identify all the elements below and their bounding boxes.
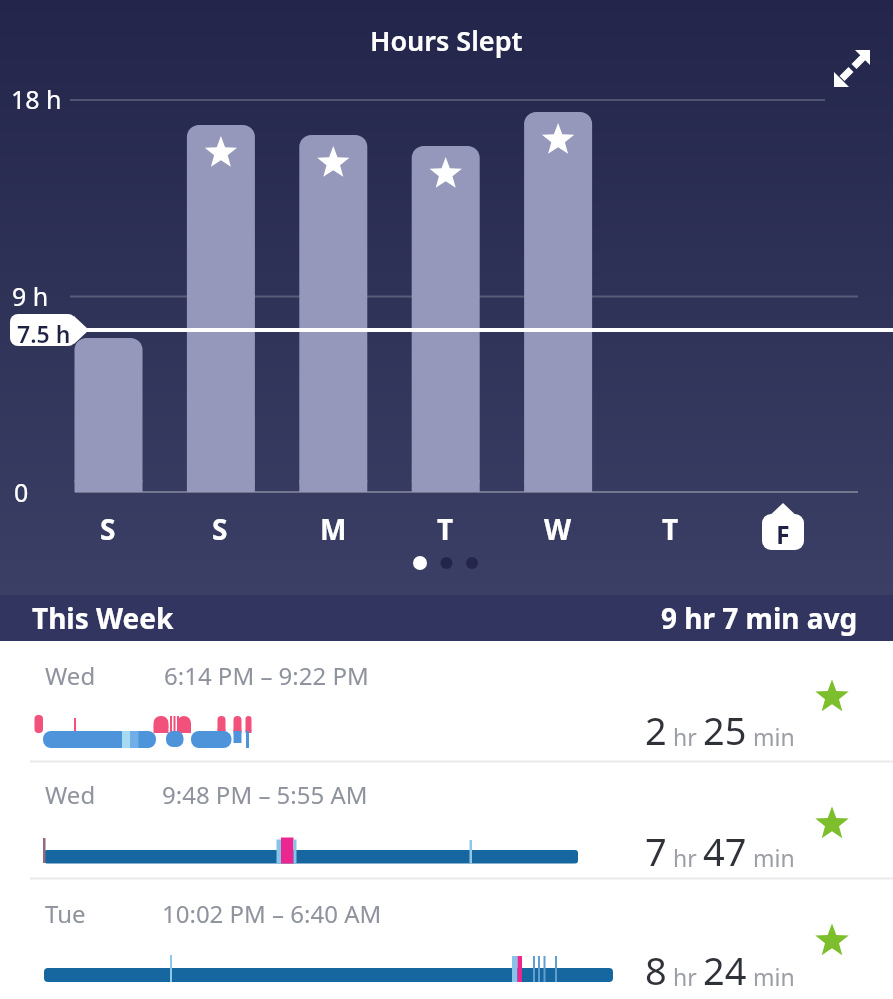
staticText: 18 h xyxy=(11,82,62,116)
staticText: Wed xyxy=(45,778,96,811)
staticText: 7 xyxy=(645,825,667,877)
staticText: T xyxy=(437,510,454,548)
staticText: 2 xyxy=(645,704,667,756)
staticText: Tue xyxy=(45,897,86,930)
staticText: T xyxy=(662,510,679,548)
staticText: 47 xyxy=(703,825,747,877)
staticText: 9:48 PM – 5:55 AM xyxy=(162,778,368,811)
staticText: min xyxy=(747,721,795,752)
staticText: 6:14 PM – 9:22 PM xyxy=(164,659,369,692)
staticText: 10:02 PM – 6:40 AM xyxy=(162,897,382,930)
staticText: 0 xyxy=(14,475,29,509)
staticText: hr xyxy=(667,721,703,752)
staticText: hr xyxy=(667,961,703,992)
staticText: 24 xyxy=(703,944,747,996)
staticText: S xyxy=(100,510,116,548)
staticText: 9 h xyxy=(12,279,49,313)
button[interactable] xyxy=(0,641,893,761)
button[interactable] xyxy=(0,879,893,999)
staticText: 7.5 h xyxy=(17,318,71,349)
button[interactable] xyxy=(815,38,875,98)
staticText: 8 xyxy=(645,944,667,996)
staticText: 25 xyxy=(703,704,747,756)
staticText: M xyxy=(320,510,347,548)
staticText: W xyxy=(544,510,572,548)
staticText: hr xyxy=(667,842,703,873)
staticText: Wed xyxy=(45,659,96,692)
staticText: Hours Slept xyxy=(370,22,523,59)
staticText: 9 hr 7 min avg xyxy=(661,599,858,637)
staticText: This Week xyxy=(32,599,174,637)
button[interactable] xyxy=(0,762,893,879)
staticText: F xyxy=(776,517,790,551)
staticText: min xyxy=(747,842,795,873)
staticText: S xyxy=(212,510,228,548)
staticText: min xyxy=(747,961,795,992)
